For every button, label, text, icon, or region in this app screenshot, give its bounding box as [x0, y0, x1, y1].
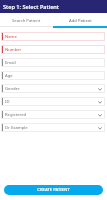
button[interactable]: ID [1, 97, 105, 106]
button[interactable]: Name [1, 32, 105, 41]
staticText: Name [5, 34, 17, 40]
staticText: Number [5, 47, 22, 53]
staticText: Add Patient [69, 18, 92, 24]
button[interactable]: Dr Example [1, 123, 105, 132]
button[interactable]: CREATE PATIENT [4, 185, 103, 195]
staticText: Gender [5, 86, 20, 92]
button[interactable]: Registered [1, 110, 105, 119]
button[interactable]: Age [1, 71, 105, 80]
staticText: CREATE PATIENT [37, 187, 70, 193]
button[interactable]: Email [1, 58, 105, 67]
staticText: Age [5, 73, 13, 79]
button[interactable]: Number [1, 45, 105, 54]
staticText: ID [5, 99, 10, 105]
button[interactable]: Gender [1, 84, 105, 93]
staticText: Dr Example [5, 125, 28, 131]
button[interactable]: Search Patient [0, 13, 53, 28]
staticText: Step 1: Select Patient [3, 3, 60, 11]
staticText: Search Patient [12, 18, 41, 24]
staticText: Registered [5, 112, 27, 118]
staticText: Email [5, 60, 16, 66]
button[interactable]: Add Patient [53, 13, 107, 28]
